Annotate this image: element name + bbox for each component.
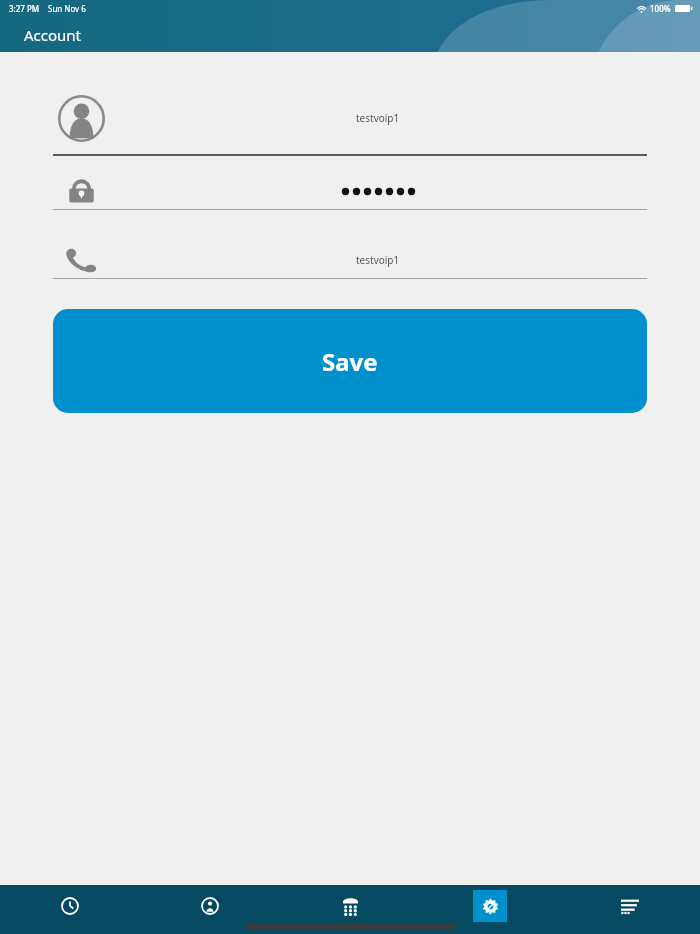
button[interactable]: testvoip1 [53,242,647,279]
staticText: testvoip1 [356,253,400,267]
button[interactable]: testvoip1 [53,82,647,156]
button[interactable]: Settings [420,885,560,934]
staticText: 3:27 PM [9,3,40,14]
staticText: Save [322,345,378,378]
button[interactable] [53,173,647,210]
button[interactable]: Recents [0,885,140,934]
staticText: Sun Nov 6 [48,3,86,14]
staticText: testvoip1 [356,111,400,125]
button[interactable]: Save [53,309,647,413]
button[interactable]: Keypad [280,885,420,934]
staticText: Account [24,25,82,45]
staticText: 100% [650,3,671,14]
button[interactable]: More [560,885,700,934]
button[interactable]: Contacts [140,885,280,934]
